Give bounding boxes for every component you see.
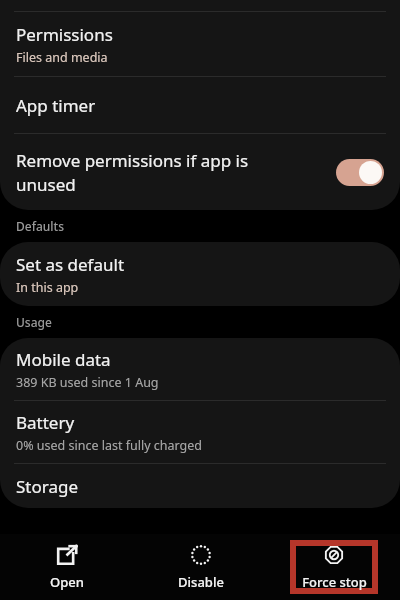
button[interactable]: Permissions xyxy=(0,12,400,76)
staticText: Mobile data xyxy=(16,348,111,371)
button[interactable]: Remove permissions if app is unused xyxy=(0,134,400,210)
staticText: In this app xyxy=(16,279,79,296)
staticText: 0% used since last fully charged xyxy=(16,437,203,454)
staticText: App timer xyxy=(16,94,96,117)
staticText: Battery xyxy=(16,411,75,434)
button[interactable]: Mobile data xyxy=(0,338,400,400)
staticText: Defaults xyxy=(16,218,65,234)
button[interactable]: App timer xyxy=(0,77,400,133)
button[interactable]: Storage xyxy=(0,464,400,508)
staticText: Files and media xyxy=(16,49,108,66)
staticText: Set as default xyxy=(16,253,125,276)
staticText: Force stop xyxy=(302,573,367,591)
staticText: Permissions xyxy=(16,23,113,46)
button[interactable]: Set as default xyxy=(0,242,400,306)
staticText: Disable xyxy=(178,573,224,591)
button[interactable]: Disable xyxy=(134,534,267,600)
staticText: Storage xyxy=(16,475,79,498)
button[interactable]: Force stop xyxy=(293,543,375,591)
staticText: Remove permissions if app is unused xyxy=(16,149,336,196)
button[interactable]: Open xyxy=(0,534,134,600)
button[interactable]: Battery xyxy=(0,401,400,463)
button[interactable]: Remove permissions toggle xyxy=(336,159,384,186)
staticText: Usage xyxy=(16,314,52,330)
staticText: 389 KB used since 1 Aug xyxy=(16,374,159,391)
staticText: Open xyxy=(50,573,84,591)
